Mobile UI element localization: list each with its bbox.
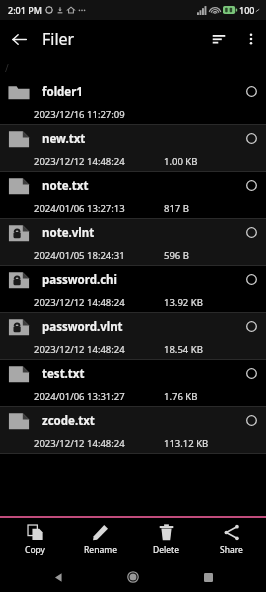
staticText: Copy [25, 544, 45, 556]
staticText: 1.00 KB [164, 155, 198, 168]
button[interactable]: zcode.txt [0, 407, 266, 454]
button[interactable]: Copy [5, 518, 65, 562]
button[interactable]: Home [116, 562, 150, 592]
button[interactable]: Recent apps [191, 562, 225, 592]
button[interactable]: note.vlnt [0, 219, 266, 266]
staticText: 18.54 KB [164, 343, 203, 356]
staticText: 2023/12/16 11:27:09 [34, 108, 125, 121]
staticText: 113.12 KB [164, 437, 209, 450]
staticText: 2023/12/12 14:48:24 [34, 296, 125, 309]
staticText: 817 B [164, 202, 189, 215]
staticText: 100 [239, 4, 255, 16]
staticText: 2:01 PM [8, 4, 42, 16]
staticText: 2023/12/12 14:48:24 [34, 437, 125, 450]
staticText: Share [220, 544, 243, 556]
button[interactable]: Back [41, 562, 75, 592]
staticText: / [5, 61, 9, 75]
staticText: folder1 [42, 84, 83, 100]
button[interactable]: Select note.vlnt [236, 219, 266, 246]
button[interactable]: new.txt [0, 125, 266, 172]
button[interactable]: note.txt [0, 172, 266, 219]
staticText: 596 B [164, 249, 189, 262]
staticText: test.txt [42, 366, 85, 382]
staticText: password.vlnt [42, 319, 123, 335]
button[interactable]: password.chi [0, 266, 266, 313]
button[interactable]: Delete [136, 518, 196, 562]
staticText: Rename [84, 544, 117, 556]
button[interactable]: Share [201, 518, 261, 562]
button[interactable]: Select password.chi [236, 266, 266, 293]
button[interactable]: Select test.txt [236, 360, 266, 387]
button[interactable]: Select folder1 [236, 78, 266, 105]
button[interactable]: Select note.txt [236, 172, 266, 199]
staticText: 2023/12/12 14:48:24 [34, 155, 125, 168]
staticText: 2024/01/06 13:31:27 [34, 390, 125, 403]
button[interactable]: More options [236, 24, 266, 54]
staticText: zcode.txt [42, 413, 95, 429]
staticText: Filer [42, 28, 75, 50]
button[interactable]: Select zcode.txt [236, 407, 266, 434]
staticText: 2024/01/05 18:24:31 [34, 249, 125, 262]
button[interactable]: test.txt [0, 360, 266, 407]
staticText: Delete [153, 544, 179, 556]
button[interactable]: Select new.txt [236, 125, 266, 152]
staticText: 1.76 KB [164, 390, 198, 403]
staticText: 13.92 KB [164, 296, 203, 309]
button[interactable]: Sort [202, 22, 236, 56]
staticText: note.vlnt [42, 225, 95, 241]
staticText: new.txt [42, 131, 86, 147]
button[interactable]: Back [0, 20, 38, 58]
button[interactable]: Rename [70, 518, 130, 562]
staticText: note.txt [42, 178, 89, 194]
staticText: 2024/01/06 13:27:13 [34, 202, 125, 215]
button[interactable]: password.vlnt [0, 313, 266, 360]
button[interactable]: Select password.vlnt [236, 313, 266, 340]
staticText: password.chi [42, 272, 117, 288]
button[interactable]: folder1 [0, 78, 266, 125]
staticText: 2023/12/12 14:48:24 [34, 343, 125, 356]
